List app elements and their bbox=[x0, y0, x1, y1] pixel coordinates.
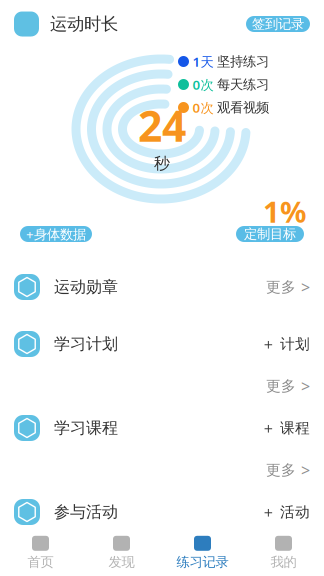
staticText: 签到记录 bbox=[252, 16, 304, 32]
staticText: 秒 bbox=[154, 153, 170, 173]
staticText: 更多 bbox=[266, 377, 296, 395]
staticText: 0次 bbox=[192, 99, 213, 116]
staticText: 24 bbox=[138, 97, 186, 153]
staticText: 练习记录 bbox=[176, 554, 228, 570]
button[interactable]: 发现 bbox=[81, 532, 162, 574]
button[interactable]: 更多 bbox=[266, 377, 310, 395]
staticText: 0次 bbox=[192, 76, 213, 93]
staticText: 运动勋章 bbox=[54, 277, 118, 297]
button[interactable]: 运动勋章 bbox=[0, 252, 324, 322]
staticText: 更多 bbox=[266, 278, 296, 296]
staticText: 运动时长 bbox=[50, 13, 118, 35]
staticText: 1天 bbox=[192, 53, 213, 70]
staticText: 我的 bbox=[270, 554, 296, 570]
staticText: 定制目标 bbox=[244, 226, 296, 242]
button[interactable]: 练习记录 bbox=[162, 532, 243, 574]
staticText: ＋ 课程 bbox=[261, 419, 310, 437]
staticText: +身体数据 bbox=[26, 225, 86, 243]
button[interactable]: 签到记录 bbox=[246, 16, 310, 32]
button[interactable]: ＋ 计划 bbox=[261, 335, 310, 353]
button[interactable]: 定制目标 bbox=[236, 226, 304, 242]
button[interactable]: ＋ 活动 bbox=[261, 503, 310, 521]
staticText: 首页 bbox=[27, 554, 53, 570]
staticText: 更多 bbox=[266, 461, 296, 479]
button[interactable]: 运动 bbox=[14, 11, 39, 36]
staticText: 发现 bbox=[108, 554, 134, 570]
staticText: 学习课程 bbox=[54, 418, 118, 438]
staticText: 1% bbox=[263, 192, 306, 231]
button[interactable]: ＋ 课程 bbox=[261, 419, 310, 437]
button[interactable]: +身体数据 bbox=[20, 226, 92, 242]
staticText: > bbox=[301, 375, 310, 397]
button[interactable]: 更多 bbox=[266, 278, 310, 296]
button[interactable]: 首页 bbox=[0, 532, 81, 574]
staticText: 参与活动 bbox=[54, 502, 118, 522]
staticText: 学习计划 bbox=[54, 334, 118, 354]
staticText: 观看视频 bbox=[217, 99, 269, 116]
button[interactable]: 我的 bbox=[243, 532, 324, 574]
staticText: 坚持练习 bbox=[217, 53, 269, 70]
staticText: ＋ 活动 bbox=[261, 503, 310, 521]
staticText: > bbox=[301, 276, 310, 298]
staticText: ＋ 计划 bbox=[261, 335, 310, 353]
staticText: > bbox=[301, 459, 310, 481]
button[interactable]: 更多 bbox=[266, 461, 310, 479]
staticText: 每天练习 bbox=[217, 76, 269, 93]
